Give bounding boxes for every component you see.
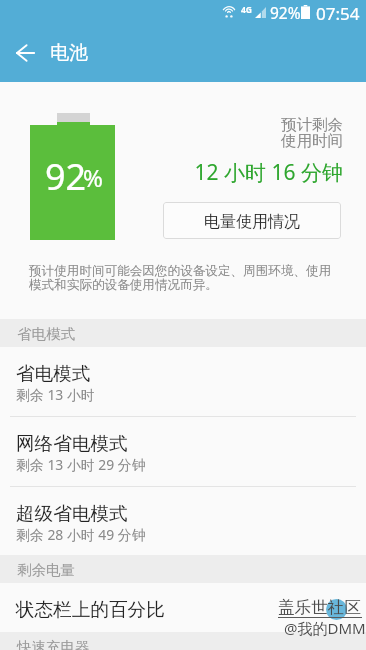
staticText: 预计使用时间可能会因您的设备设定、周围环境、使用 模式和实际的设备使用情况而异。 bbox=[29, 263, 349, 293]
button[interactable]: Back bbox=[0, 24, 50, 82]
staticText: 预计剩余 使用时间 bbox=[141, 115, 343, 151]
button[interactable]: 省电模式 bbox=[0, 347, 366, 416]
button[interactable]: 网络省电模式 bbox=[0, 417, 366, 486]
staticText: 92% bbox=[270, 2, 301, 23]
staticText: 剩余 13 小时 29 分钟 bbox=[16, 455, 146, 474]
staticText: 省电模式 bbox=[16, 362, 91, 385]
staticText: 电量使用情况 bbox=[204, 212, 300, 232]
staticText: 省电模式 bbox=[17, 325, 75, 343]
button[interactable]: 电量使用情况 bbox=[163, 202, 341, 239]
staticText: 电池 bbox=[50, 41, 88, 65]
staticText: 4G bbox=[241, 4, 253, 16]
staticText: 剩余 13 小时 bbox=[16, 385, 95, 404]
staticText: 剩余电量 bbox=[17, 561, 75, 579]
staticText: % bbox=[83, 161, 103, 194]
staticText: 92 bbox=[45, 152, 87, 201]
button[interactable]: 超级省电模式 bbox=[0, 487, 366, 555]
staticText: 快速充电器 bbox=[17, 638, 90, 650]
button[interactable]: 状态栏上的百分比 bbox=[0, 583, 366, 632]
staticText: 盖乐世社区 bbox=[278, 597, 361, 618]
staticText: 剩余 28 小时 49 分钟 bbox=[16, 525, 146, 544]
staticText: 07:54 bbox=[316, 2, 360, 25]
staticText: 状态栏上的百分比 bbox=[16, 598, 165, 621]
staticText: 网络省电模式 bbox=[16, 432, 128, 455]
staticText: @我的DMM bbox=[284, 618, 366, 638]
staticText: 超级省电模式 bbox=[16, 502, 128, 525]
staticText: 12 小时 16 分钟 bbox=[141, 158, 343, 187]
